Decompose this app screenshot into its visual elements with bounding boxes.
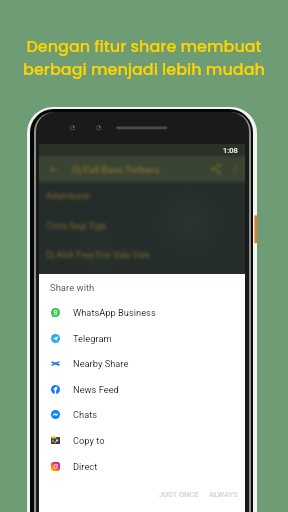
button[interactable]: Nearby Share [39,350,245,376]
button[interactable]: WhatsApp Business [39,299,245,325]
button[interactable]: Share [206,159,226,179]
button[interactable]: JUST ONCE [154,485,204,504]
staticText: Direct [73,461,98,472]
button[interactable]: Telegram [39,325,245,351]
staticText: Copy to [73,435,105,446]
staticText: Adambarai [46,191,90,202]
button[interactable]: Cinta Segi Tiga [39,211,245,241]
staticText: Dj Alok Free Fire Vale Vale [46,250,151,261]
button[interactable]: Chats [39,401,245,427]
staticText: berbagi menjadi lebih mudah [23,58,265,80]
button[interactable]: Copy to [39,427,245,453]
staticText: Nearby Share [73,358,129,369]
staticText: Share with [50,282,95,293]
staticText: 1:08 [223,146,238,155]
button[interactable]: Direct [39,453,245,479]
button[interactable]: Dj Alok Free Fire Vale Vale [39,240,245,270]
staticText: Dj Full Bass Terbaru [72,164,160,175]
button[interactable]: Back [43,159,63,179]
staticText: Telegram [73,333,112,344]
staticText: Dengan fitur share membuat [26,35,262,57]
staticText: Chats [73,409,98,420]
staticText: News Feed [73,384,119,395]
button[interactable]: Adambarai [39,181,245,211]
button[interactable]: ALWAYS [204,485,243,504]
staticText: Cinta Segi Tiga [46,221,107,232]
staticText: WhatsApp Business [73,307,156,318]
button[interactable]: News Feed [39,376,245,402]
